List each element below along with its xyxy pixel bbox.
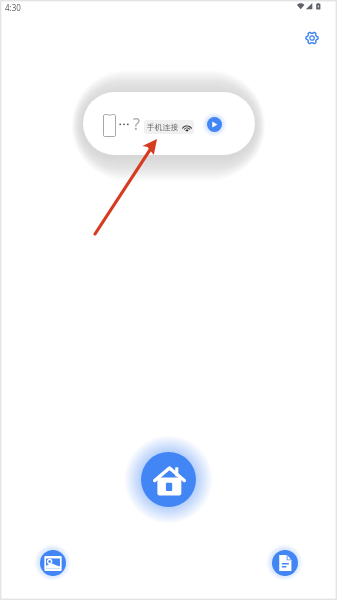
staticText: ? [133,113,140,135]
button[interactable]: ? [83,92,255,155]
staticText: 4:30 [5,2,21,13]
button[interactable]: Settings [298,24,326,52]
button[interactable]: Home [124,435,213,524]
staticText: 手机连接 [147,122,179,132]
button[interactable]: Gallery [34,544,71,581]
button[interactable]: Documents [266,544,303,581]
